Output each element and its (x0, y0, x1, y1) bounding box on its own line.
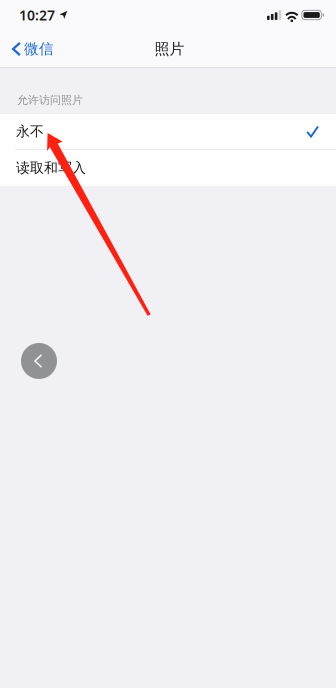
staticText: 照片 (154, 40, 184, 58)
button[interactable]: 微信 (0, 33, 62, 65)
staticText: 永不 (16, 123, 44, 140)
button[interactable]: 读取和写入 (0, 150, 336, 186)
button[interactable]: Back (21, 343, 57, 379)
staticText: 读取和写入 (16, 159, 86, 177)
staticText: 允许访问照片 (17, 93, 83, 107)
staticText: 10:27 (19, 5, 55, 25)
staticText: 微信 (24, 40, 54, 58)
button[interactable]: 永不 (0, 114, 336, 149)
